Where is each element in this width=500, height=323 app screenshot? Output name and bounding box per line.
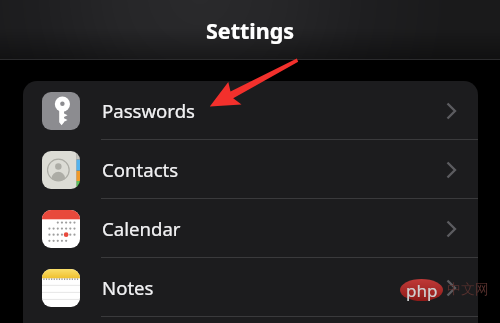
- other: Contacts icon: [42, 151, 80, 189]
- button[interactable]: Passwords icon: [23, 81, 478, 140]
- staticText: Settings: [206, 16, 295, 45]
- staticText: php: [406, 279, 438, 302]
- button[interactable]: Calendar icon: [23, 199, 478, 258]
- other: Annotation arrow pointing at Passwords: [0, 0, 500, 323]
- button[interactable]: Notes icon: [23, 258, 478, 317]
- staticText: Calendar: [102, 216, 181, 241]
- staticText: Contacts: [102, 157, 179, 182]
- staticText: Passwords: [102, 98, 196, 123]
- staticText: 中文网: [447, 281, 489, 299]
- staticText: Notes: [102, 275, 154, 300]
- other: Calendar icon: [42, 210, 80, 248]
- button[interactable]: Contacts icon: [23, 140, 478, 199]
- other: Notes icon: [42, 269, 80, 307]
- other: Passwords icon: [42, 92, 80, 130]
